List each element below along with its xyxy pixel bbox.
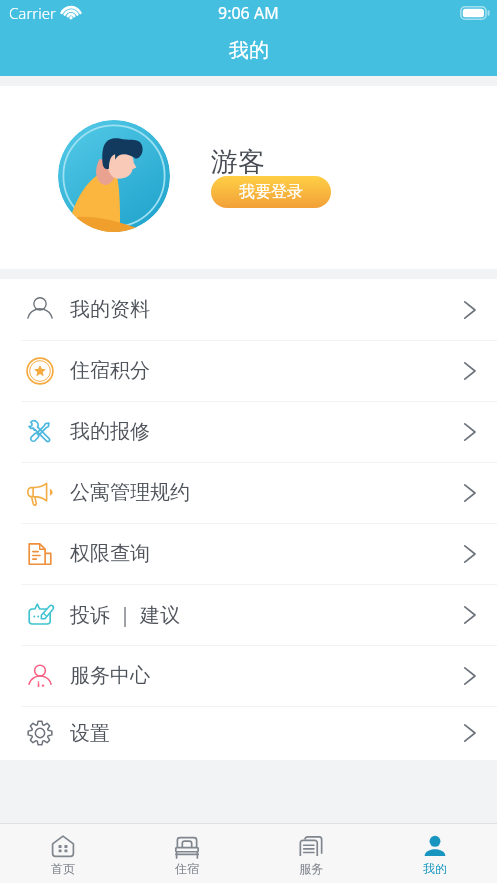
button[interactable]: 服务中心 (0, 645, 497, 706)
staticText: 我的报修 (70, 419, 150, 444)
staticText: 服务 (299, 861, 323, 876)
staticText: 我的资料 (70, 297, 150, 322)
button[interactable]: 住宿 (125, 823, 249, 883)
button[interactable]: 服务 (249, 823, 373, 883)
staticText: 住宿积分 (70, 358, 150, 383)
button[interactable]: 我的报修 (0, 401, 497, 462)
staticText: 设置 (70, 721, 110, 746)
button[interactable]: 住宿积分 (0, 340, 497, 401)
staticText: Carrier (9, 3, 56, 23)
staticText: 权限查询 (70, 541, 150, 566)
staticText: 首页 (51, 861, 75, 876)
staticText: 公寓管理规约 (70, 480, 190, 505)
staticText: 我的 (229, 38, 269, 63)
staticText: 投诉 ｜ 建议 (70, 601, 180, 628)
staticText: 我要登录 (239, 182, 303, 202)
button[interactable]: 我的 (373, 823, 497, 883)
button[interactable]: 公寓管理规约 (0, 462, 497, 523)
staticText: 住宿 (175, 861, 199, 876)
staticText: 服务中心 (70, 663, 150, 688)
staticText: 9:06 AM (218, 2, 279, 24)
button[interactable]: 首页 (0, 823, 125, 883)
button[interactable]: 投诉 ｜ 建议 (0, 584, 497, 645)
staticText: 我的 (423, 861, 447, 876)
button[interactable]: 我要登录 (211, 176, 331, 208)
staticText: 游客 (211, 145, 265, 179)
button[interactable]: 设置 (0, 706, 497, 760)
button[interactable]: 权限查询 (0, 523, 497, 584)
button[interactable]: 我的资料 (0, 279, 497, 340)
